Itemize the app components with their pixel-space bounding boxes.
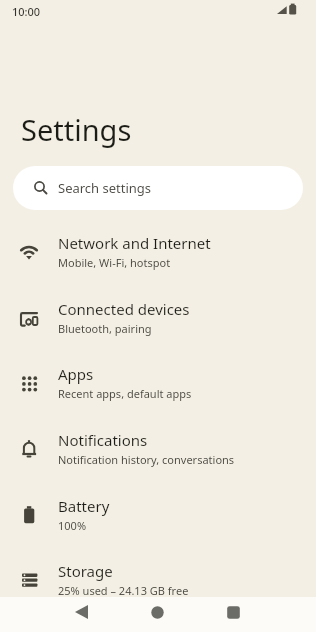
button[interactable]: Connected devices: [0, 285, 316, 350]
button[interactable]: Network and Internet: [0, 219, 316, 284]
staticText: Recent apps, default apps: [58, 386, 192, 401]
staticText: Apps: [58, 364, 94, 384]
button[interactable]: Search settings: [13, 166, 303, 210]
staticText: Search settings: [58, 179, 152, 197]
button[interactable]: Battery: [0, 482, 316, 547]
staticText: Notification history, conversations: [58, 452, 235, 467]
staticText: 10:00: [12, 4, 41, 19]
staticText: Notifications: [58, 430, 148, 450]
staticText: Storage: [58, 561, 113, 581]
staticText: Settings: [21, 110, 132, 149]
staticText: Network and Internet: [58, 233, 211, 253]
button[interactable]: Notifications: [0, 416, 316, 481]
button[interactable]: Apps: [0, 350, 316, 415]
button[interactable]: [67, 597, 97, 627]
button[interactable]: Storage: [0, 547, 316, 612]
button[interactable]: [218, 597, 248, 627]
staticText: 25% used – 24.13 GB free: [58, 583, 189, 598]
staticText: Battery: [58, 496, 110, 516]
staticText: 100%: [58, 518, 87, 533]
button[interactable]: [142, 597, 172, 627]
staticText: Mobile, Wi-Fi, hotspot: [58, 255, 171, 270]
staticText: Bluetooth, pairing: [58, 321, 152, 336]
staticText: Connected devices: [58, 299, 190, 319]
